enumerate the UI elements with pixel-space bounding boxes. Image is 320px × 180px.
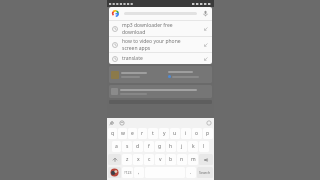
- button[interactable]: d: [133, 141, 143, 152]
- staticText: translate: [122, 55, 143, 62]
- staticText: r: [141, 130, 144, 137]
- button[interactable]: b: [166, 154, 176, 165]
- button[interactable]: h: [166, 141, 176, 152]
- staticText: v: [159, 156, 162, 163]
- staticText: mp3 downloader free: [122, 22, 173, 29]
- button[interactable]: k: [188, 141, 198, 152]
- staticText: download: [122, 29, 146, 36]
- button[interactable]: q: [108, 128, 117, 139]
- staticText: w: [121, 130, 125, 137]
- button[interactable]: Voice search: [202, 10, 209, 17]
- button[interactable]: [109, 85, 212, 98]
- staticText: u: [173, 130, 177, 137]
- button[interactable]: a: [112, 141, 121, 152]
- staticText: c: [148, 156, 151, 163]
- staticText: o: [195, 130, 199, 137]
- button[interactable]: p: [203, 128, 213, 139]
- button[interactable]: o: [192, 128, 202, 139]
- staticText: ?123: [124, 170, 132, 175]
- button[interactable]: how to video your phone: [109, 37, 212, 52]
- button[interactable]: c: [144, 154, 154, 165]
- button[interactable]: ?123: [122, 167, 133, 178]
- button[interactable]: i: [181, 128, 191, 139]
- button[interactable]: n: [177, 154, 187, 165]
- staticText: a: [115, 143, 118, 150]
- staticText: screen apps: [122, 45, 151, 52]
- staticText: g: [158, 143, 162, 150]
- staticText: Search: [199, 170, 211, 175]
- staticText: i: [185, 130, 187, 137]
- staticText: j: [181, 143, 183, 150]
- button[interactable]: l: [199, 141, 209, 152]
- button[interactable]: x: [133, 154, 143, 165]
- button[interactable]: u: [170, 128, 180, 139]
- button[interactable]: ,: [134, 167, 144, 178]
- button[interactable]: [109, 66, 212, 83]
- staticText: b: [169, 156, 173, 163]
- button[interactable]: z: [122, 154, 132, 165]
- button[interactable]: mp3 downloader free: [109, 21, 212, 36]
- button[interactable]: Keyboard settings: [109, 120, 115, 126]
- button[interactable]: Insert suggestion: [203, 42, 209, 48]
- staticText: f: [148, 143, 150, 150]
- button[interactable]: j: [177, 141, 187, 152]
- staticText: x: [137, 156, 140, 163]
- button[interactable]: w: [118, 128, 127, 139]
- button[interactable]: s: [122, 141, 132, 152]
- staticText: e: [131, 130, 134, 137]
- staticText: t: [152, 130, 154, 137]
- staticText: d: [136, 143, 140, 150]
- staticText: k: [192, 143, 195, 150]
- staticText: q: [111, 130, 115, 137]
- button[interactable]: Search: [197, 167, 213, 178]
- button[interactable]: Emoji: [119, 120, 125, 126]
- button[interactable]: Voice search: [109, 7, 212, 20]
- button[interactable]: More options: [206, 120, 212, 126]
- staticText: how to video your phone: [122, 38, 181, 45]
- staticText: n: [180, 156, 184, 163]
- staticText: s: [126, 143, 129, 150]
- button[interactable]: f: [144, 141, 154, 152]
- button[interactable]: m: [188, 154, 198, 165]
- button[interactable]: Insert suggestion: [203, 56, 209, 62]
- button[interactable]: Sticker: [108, 167, 121, 178]
- staticText: l: [203, 143, 205, 150]
- button[interactable]: translate: [109, 53, 212, 64]
- button[interactable]: e: [128, 128, 137, 139]
- staticText: h: [169, 143, 173, 150]
- button[interactable]: r: [138, 128, 147, 139]
- staticText: .: [190, 169, 192, 176]
- button[interactable]: t: [148, 128, 158, 139]
- staticText: p: [206, 130, 210, 137]
- button[interactable]: Insert suggestion: [203, 26, 209, 32]
- staticText: z: [126, 156, 129, 163]
- staticText: y: [163, 130, 166, 137]
- button[interactable]: g: [155, 141, 165, 152]
- button[interactable]: .: [186, 167, 196, 178]
- staticText: ,: [138, 169, 140, 176]
- button[interactable]: Backspace: [199, 154, 213, 165]
- staticText: m: [191, 156, 196, 163]
- button[interactable]: Shift: [108, 154, 121, 165]
- button[interactable]: y: [159, 128, 169, 139]
- button[interactable]: v: [155, 154, 165, 165]
